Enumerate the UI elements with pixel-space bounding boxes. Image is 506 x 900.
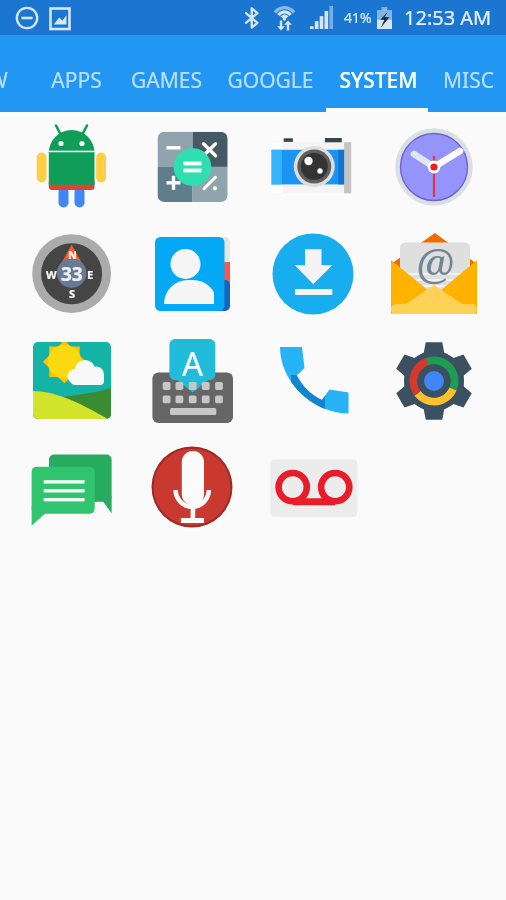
staticText: GOOGLE — [227, 66, 314, 95]
button[interactable]: GOOGLE — [216, 35, 324, 112]
staticText: @ — [416, 234, 455, 291]
button[interactable]: Messages — [31, 448, 111, 528]
button[interactable]: Settings — [394, 340, 474, 420]
staticText: W — [0, 66, 8, 95]
staticText: A — [182, 341, 204, 386]
button[interactable]: Android — [31, 127, 111, 207]
staticText: MISC — [443, 66, 494, 95]
button[interactable]: Voice Recorder — [152, 448, 232, 528]
button[interactable]: APPS — [36, 35, 116, 112]
button[interactable]: Do not disturb — [13, 4, 41, 32]
staticText: 12:53 AM — [404, 4, 492, 31]
button[interactable]: Contacts — [152, 234, 232, 314]
button[interactable]: Email — [394, 234, 474, 314]
staticText: S — [69, 286, 76, 301]
staticText: 33 — [61, 261, 83, 287]
button[interactable]: W — [0, 35, 42, 112]
button[interactable]: Keyboard — [152, 340, 232, 420]
button[interactable]: Compass — [31, 234, 111, 314]
button[interactable]: Clock — [394, 127, 474, 207]
button[interactable]: Phone — [273, 340, 353, 420]
button[interactable]: SYSTEM — [326, 35, 430, 112]
button[interactable]: Screenshot — [46, 4, 74, 32]
button[interactable]: Camera — [273, 127, 353, 207]
button[interactable]: GAMES — [116, 35, 216, 112]
staticText: 41% — [344, 8, 372, 27]
button[interactable]: MISC — [424, 35, 506, 112]
button[interactable]: Gallery — [31, 340, 111, 420]
staticText: APPS — [51, 66, 102, 95]
button[interactable]: Voicemail — [273, 448, 353, 528]
button[interactable]: Calculator — [152, 127, 232, 207]
staticText: E — [87, 267, 94, 282]
staticText: SYSTEM — [339, 66, 418, 95]
staticText: N — [68, 247, 77, 262]
button[interactable]: Downloads — [273, 234, 353, 314]
staticText: GAMES — [131, 66, 202, 95]
staticText: W — [46, 267, 57, 282]
